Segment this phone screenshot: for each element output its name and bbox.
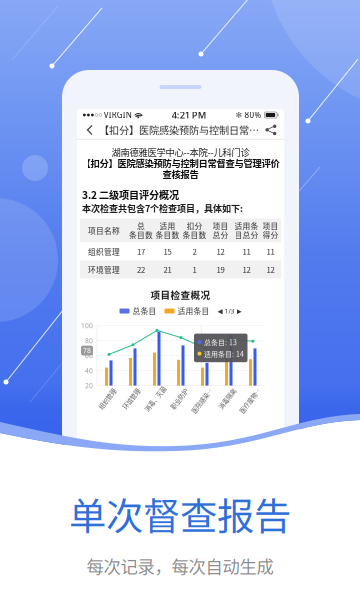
- staticText: 项目检查概况: [150, 287, 210, 301]
- button[interactable]: Back: [81, 120, 99, 139]
- staticText: 22: [137, 264, 145, 275]
- staticText: 项目: [212, 220, 228, 232]
- staticText: 60: [85, 351, 93, 360]
- staticText: 单次督查报告: [69, 487, 291, 541]
- staticText: ◀ 1/3 ▶: [217, 307, 241, 315]
- staticText: 目总分: [234, 229, 258, 241]
- staticText: 总分: [212, 229, 228, 241]
- staticText: 11: [266, 246, 274, 257]
- staticText: 40: [85, 366, 93, 375]
- staticText: 17: [137, 246, 145, 257]
- staticText: 【扣分】医院感染预防与控制日常督查…: [99, 123, 262, 137]
- staticText: 扣分: [186, 220, 202, 232]
- staticText: 总条目: 13: [204, 337, 237, 347]
- staticText: 医疗废物管理: [234, 394, 268, 403]
- staticText: 项目名称: [88, 225, 120, 236]
- staticText: 78: [83, 346, 91, 355]
- staticText: 12: [242, 264, 250, 275]
- staticText: 80: [85, 336, 93, 345]
- staticText: 21: [163, 264, 171, 275]
- staticText: 组织管理: [95, 394, 119, 403]
- staticText: 条目数: [182, 229, 206, 241]
- staticText: 消毒隔离: [215, 394, 239, 403]
- staticText: 条目数: [155, 229, 179, 241]
- staticText: 2: [192, 246, 196, 257]
- staticText: 适用条: [234, 220, 258, 232]
- staticText: 适用: [159, 220, 175, 232]
- staticText: 总条目: [132, 305, 156, 317]
- staticText: 20: [85, 381, 93, 390]
- staticText: 1: [192, 264, 196, 275]
- staticText: 每次记录，每次自动生成: [86, 553, 273, 578]
- staticText: 湖南德雅医学中心--本院--儿科门诊: [111, 145, 249, 159]
- staticText: 条目数: [129, 229, 153, 241]
- button[interactable]: Share: [262, 120, 280, 139]
- staticText: 组织管理: [88, 246, 120, 257]
- staticText: 80%: [242, 110, 263, 120]
- staticText: 4:21 PM: [172, 109, 207, 121]
- staticText: 19: [216, 264, 224, 275]
- staticText: 总: [137, 220, 145, 232]
- staticText: 11: [242, 246, 250, 257]
- staticText: 职业防护: [167, 394, 191, 403]
- staticText: 【扣分】医院感染预防与控制日常督查与管理评价: [81, 156, 279, 170]
- staticText: ✻: [235, 110, 242, 120]
- staticText: 12: [216, 246, 224, 257]
- staticText: VIRGIN: [102, 110, 134, 120]
- staticText: 环境管理: [88, 264, 120, 275]
- staticText: 项目: [262, 220, 278, 232]
- staticText: 消毒、灭菌: [140, 394, 170, 403]
- staticText: 100: [81, 321, 93, 330]
- staticText: 3.2 二级项目评分概况: [82, 187, 179, 202]
- staticText: 适用条目: 14: [204, 349, 244, 359]
- staticText: 12: [266, 264, 274, 275]
- staticText: 15: [163, 246, 171, 257]
- staticText: 环境管理: [119, 394, 143, 403]
- staticText: 得分: [262, 229, 278, 241]
- staticText: 适用条目: [177, 305, 209, 317]
- staticText: 本次检查共包含7个检查项目，具体如下:: [82, 201, 243, 214]
- staticText: 医院感染监测: [186, 394, 220, 403]
- staticText: 查核报告: [162, 167, 198, 181]
